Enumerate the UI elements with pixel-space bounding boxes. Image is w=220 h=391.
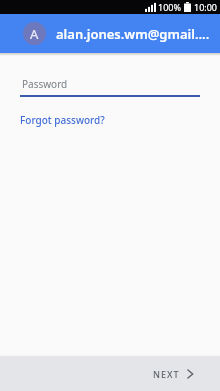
staticText: 100% bbox=[158, 1, 181, 13]
button[interactable]: Forgot password? bbox=[20, 113, 105, 127]
button[interactable]: Password bbox=[20, 77, 200, 97]
staticText: Password bbox=[22, 77, 68, 91]
staticText: A bbox=[30, 25, 39, 43]
staticText: NEXT bbox=[153, 368, 180, 380]
staticText: 10:00 bbox=[194, 1, 218, 13]
staticText: alan.jones.wm@gmail.... bbox=[56, 25, 210, 43]
button[interactable]: NEXT bbox=[153, 357, 220, 391]
